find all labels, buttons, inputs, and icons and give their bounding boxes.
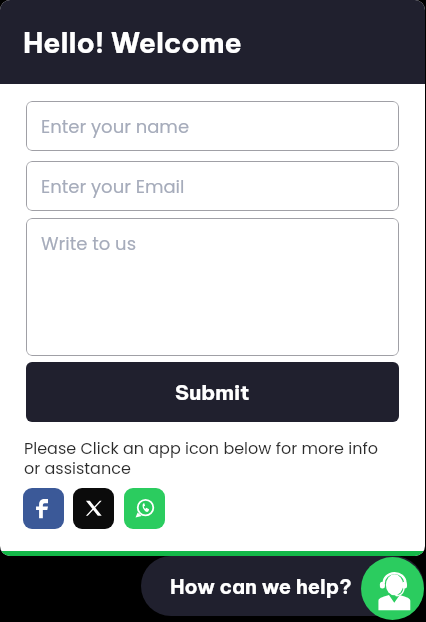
button[interactable]: Write to us: [26, 218, 399, 356]
button[interactable]: X, formerly Twitter: [73, 488, 114, 529]
button[interactable]: Enter your Email: [26, 161, 399, 211]
staticText: Submit: [175, 379, 250, 406]
staticText: Enter your name: [41, 114, 190, 139]
staticText: Hello! Welcome: [23, 25, 242, 60]
button[interactable]: WhatsApp: [124, 488, 165, 529]
button[interactable]: How can we help?: [141, 556, 424, 616]
button[interactable]: Submit: [26, 362, 399, 422]
button[interactable]: Chat with support: [361, 557, 424, 620]
staticText: Write to us: [41, 231, 137, 256]
staticText: Enter your Email: [41, 174, 185, 199]
button[interactable]: Facebook: [23, 488, 64, 529]
staticText: Please Click an app icon below for more …: [24, 437, 386, 479]
staticText: How can we help?: [170, 574, 352, 599]
button[interactable]: Enter your name: [26, 101, 399, 151]
